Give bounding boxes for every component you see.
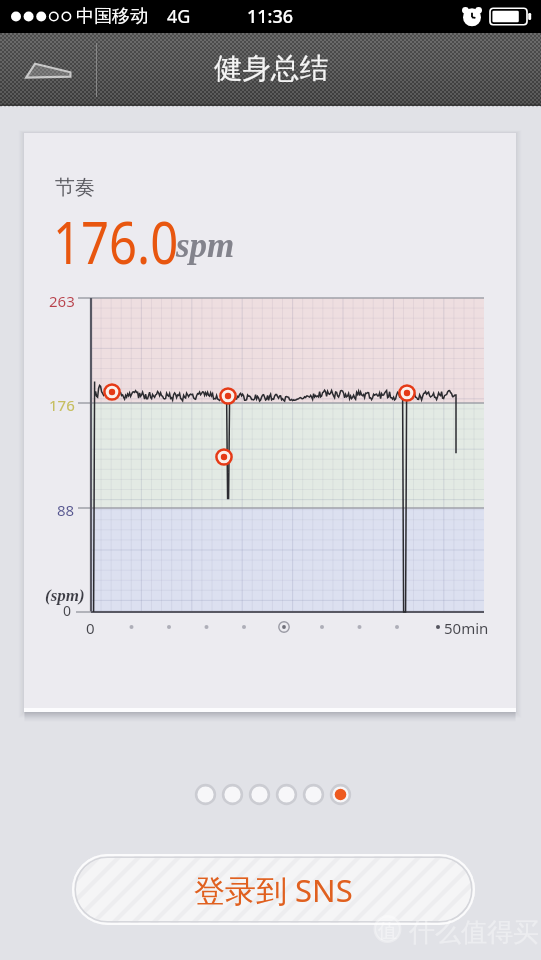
staticText: 176.0 <box>53 202 179 281</box>
button[interactable]: Page 1 <box>192 781 219 808</box>
staticText: (spm) <box>45 586 85 605</box>
staticText: 0 <box>86 618 95 638</box>
button[interactable]: Page 6 <box>327 781 354 808</box>
staticText: 节奏 <box>55 175 95 200</box>
staticText: 登录到 SNS <box>194 869 353 911</box>
staticText: 263 <box>49 291 75 311</box>
button[interactable]: Page 3 <box>246 781 273 808</box>
button[interactable]: Page 2 <box>219 781 246 808</box>
staticText: 11:36 <box>247 4 294 29</box>
staticText: 88 <box>57 500 75 520</box>
button[interactable]: Back <box>0 33 96 106</box>
staticText: 值 <box>378 919 397 943</box>
staticText: 中国移动 <box>76 5 148 28</box>
staticText: 50min <box>444 618 489 638</box>
button[interactable]: Page 5 <box>300 781 327 808</box>
staticText: 0 <box>63 601 72 620</box>
staticText: spm <box>176 226 235 265</box>
button[interactable]: Page 4 <box>273 781 300 808</box>
staticText: 176 <box>49 395 75 415</box>
staticText: 4G <box>167 4 191 29</box>
button[interactable]: 登录到 SNS <box>72 854 475 925</box>
staticText: 健身总结 <box>214 51 328 87</box>
staticText: 什么值得买 <box>409 916 539 949</box>
